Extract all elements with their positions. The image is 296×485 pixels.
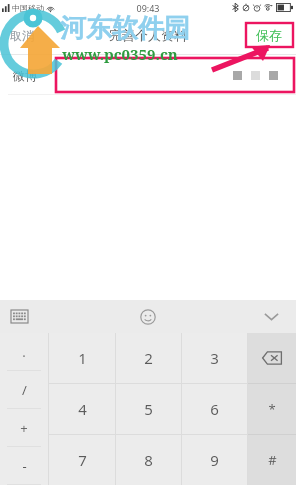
button[interactable]: Hide keyboard <box>261 309 282 324</box>
staticText: www.pc0359.cn <box>62 44 178 64</box>
staticText: * <box>268 400 276 418</box>
staticText: + <box>20 419 28 437</box>
button[interactable]: Emoji <box>137 306 159 328</box>
staticText: 河东软件园 <box>60 12 190 45</box>
staticText: 9 <box>210 450 219 470</box>
staticText: 完善个人资料 <box>109 27 187 43</box>
staticText: 6 <box>210 399 219 419</box>
staticText: 3 <box>210 348 219 368</box>
staticText: 中国移动 <box>12 3 44 13</box>
button[interactable]: Switch keyboard <box>8 307 31 326</box>
staticText: 8 <box>144 450 153 470</box>
button[interactable]: Backspace <box>248 333 296 383</box>
button[interactable]: 8 <box>116 435 181 485</box>
button[interactable]: 取消 <box>0 20 44 51</box>
button[interactable]: 4 <box>49 384 115 434</box>
button[interactable]: 5 <box>116 384 181 434</box>
button[interactable]: / <box>0 371 48 408</box>
staticText: 09:43 <box>136 2 160 14</box>
button[interactable]: 2 <box>116 333 181 383</box>
staticText: 7 <box>78 450 87 470</box>
button[interactable]: 1 <box>49 333 115 383</box>
button[interactable]: 9 <box>182 435 247 485</box>
staticText: 微博 <box>13 68 37 83</box>
staticText: / <box>22 381 27 399</box>
staticText: 取消 <box>10 28 34 43</box>
button[interactable]: 保存 <box>249 23 289 47</box>
staticText: # <box>268 451 277 469</box>
button[interactable]: + <box>0 409 48 446</box>
staticText: . <box>22 343 26 361</box>
button[interactable]: 6 <box>182 384 247 434</box>
staticText: - <box>22 457 27 475</box>
staticText: 保存 <box>256 27 282 43</box>
button[interactable]: 3 <box>182 333 247 383</box>
staticText: 2 <box>144 348 153 368</box>
button[interactable]: * <box>248 384 296 434</box>
button[interactable]: 7 <box>49 435 115 485</box>
staticText: 4 <box>78 399 87 419</box>
button[interactable]: - <box>0 447 48 484</box>
staticText: 5 <box>144 399 153 419</box>
button[interactable] <box>56 58 294 92</box>
button[interactable]: . <box>0 333 48 370</box>
staticText: 1 <box>78 348 87 368</box>
button[interactable]: # <box>248 435 296 485</box>
